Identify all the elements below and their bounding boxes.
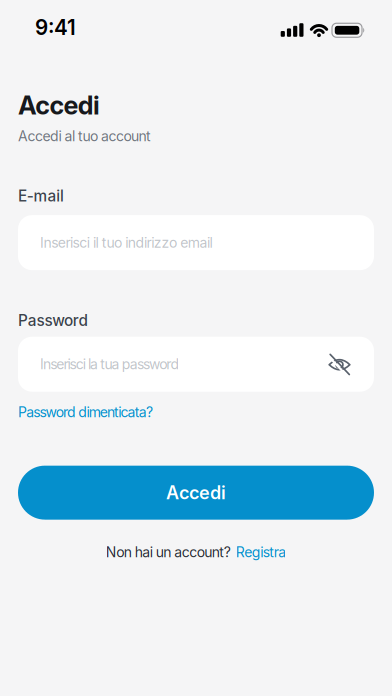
staticText: Accedi <box>166 482 226 504</box>
button[interactable]: Password dimenticata? <box>18 404 153 421</box>
button[interactable]: Inserisci il tuo indirizzo email <box>18 215 374 270</box>
staticText: Accedi al tuo account <box>18 128 151 145</box>
staticText: Password dimenticata? <box>18 404 153 421</box>
staticText: E-mail <box>18 187 64 205</box>
staticText: Inserisci il tuo indirizzo email <box>40 234 213 251</box>
button[interactable]: Non hai un account? <box>106 544 286 560</box>
staticText: 9:41 <box>35 15 76 40</box>
button[interactable]: Accedi <box>18 466 374 520</box>
button[interactable]: Inserisci la tua password <box>18 337 374 392</box>
staticText: Password <box>18 311 88 330</box>
staticText: Accedi <box>18 90 100 121</box>
staticText: Inserisci la tua password <box>40 356 179 373</box>
staticText: Registra <box>236 544 286 560</box>
staticText: Non hai un account? <box>106 544 231 560</box>
